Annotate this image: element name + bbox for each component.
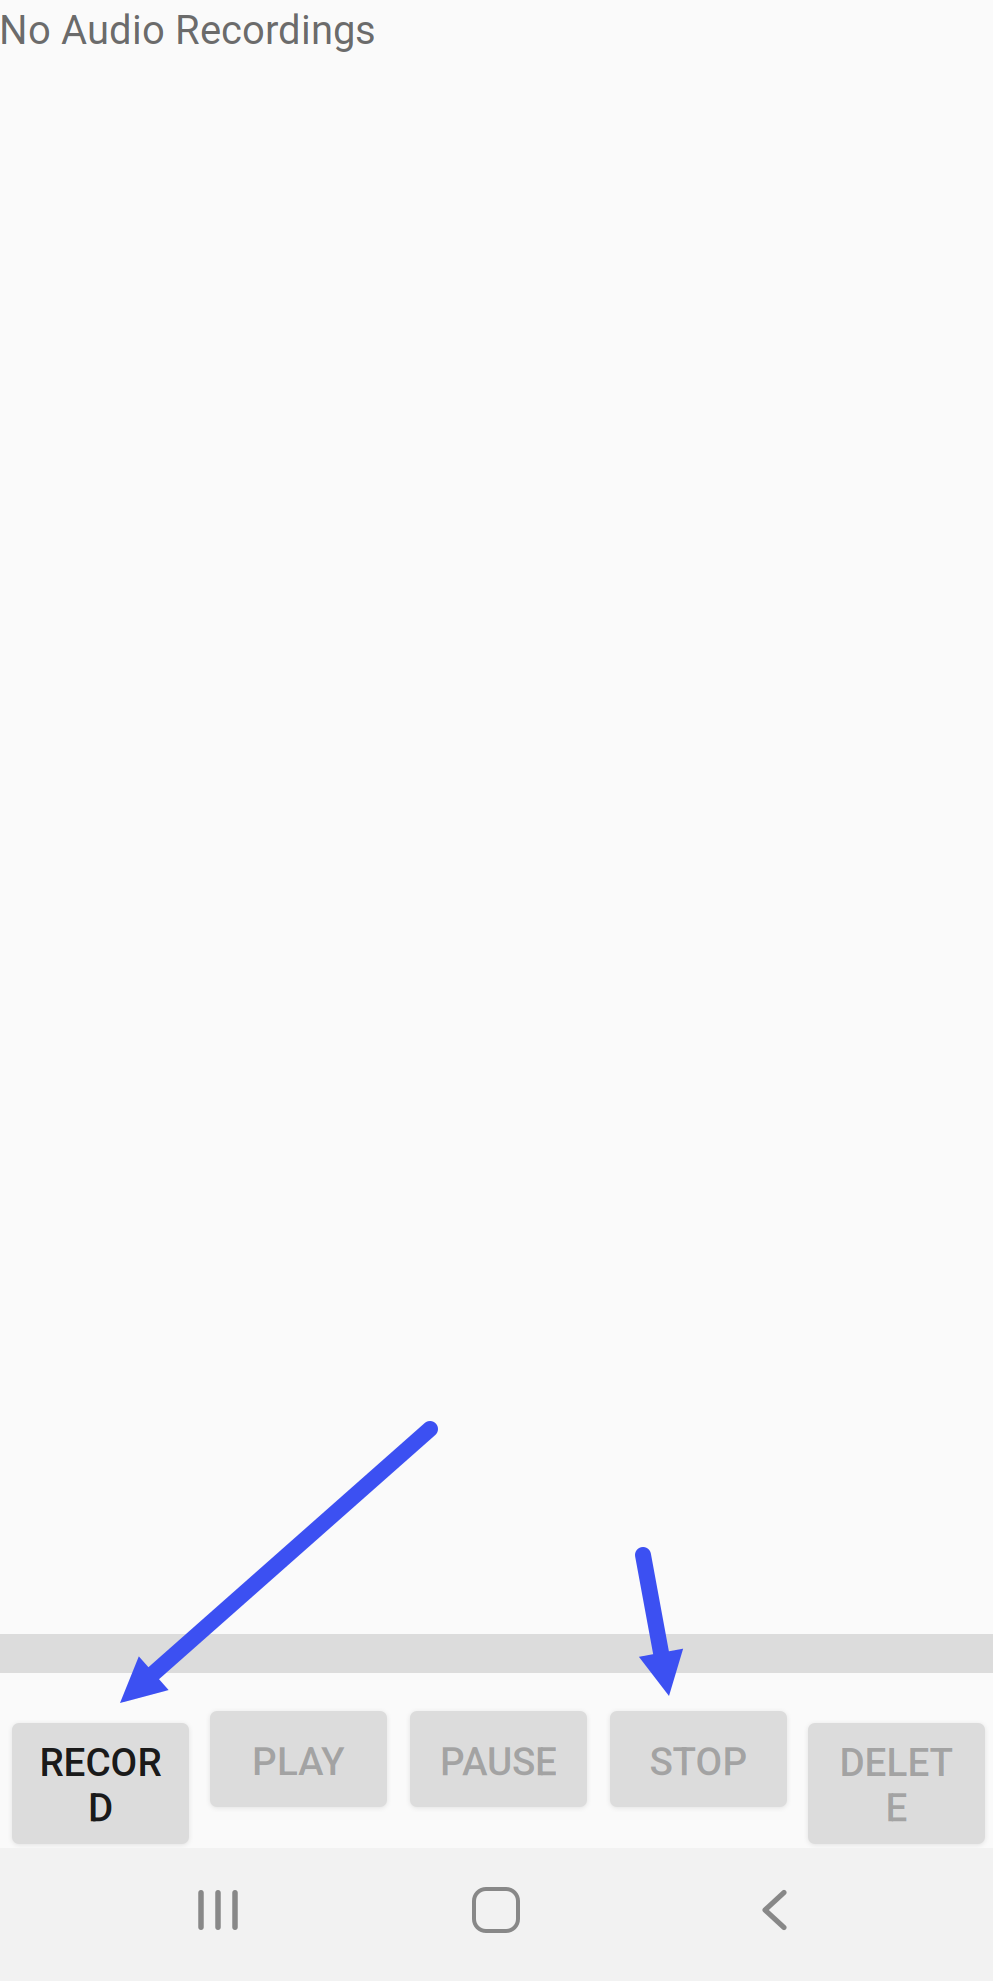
button[interactable]: Home — [426, 1865, 566, 1955]
button[interactable]: Back — [701, 1865, 841, 1955]
staticText: DELET — [839, 1740, 953, 1785]
button[interactable]: STOP — [610, 1711, 787, 1807]
staticText: D — [88, 1785, 113, 1831]
staticText: No Audio Recordings — [0, 7, 376, 54]
staticText: E — [885, 1785, 907, 1831]
staticText: PLAY — [252, 1739, 345, 1785]
staticText: STOP — [649, 1739, 747, 1785]
staticText: RECOR — [39, 1740, 161, 1785]
button[interactable]: PLAY — [210, 1711, 387, 1807]
button[interactable]: DELET — [808, 1723, 985, 1844]
button[interactable]: PAUSE — [410, 1711, 587, 1807]
button[interactable]: Recents — [148, 1865, 288, 1955]
staticText: PAUSE — [440, 1739, 557, 1785]
button[interactable]: RECOR — [12, 1723, 189, 1844]
